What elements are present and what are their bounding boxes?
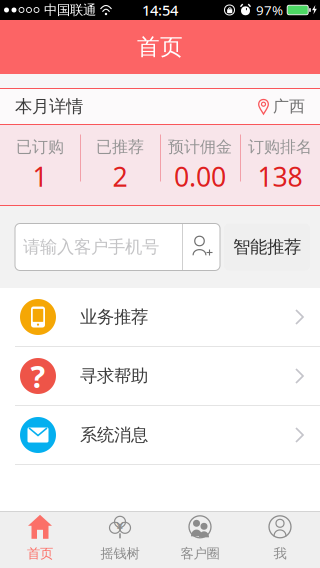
staticText: 14:54 bbox=[142, 0, 178, 20]
staticText: 138 bbox=[257, 159, 302, 194]
staticText: 系统消息 bbox=[80, 424, 148, 446]
staticText: 预计佣金 bbox=[168, 137, 232, 157]
staticText: 客户圈 bbox=[180, 545, 219, 562]
staticText: 业务推荐 bbox=[80, 306, 148, 328]
button[interactable]: 系统消息 bbox=[0, 406, 320, 464]
staticText: 智能推荐 bbox=[233, 236, 301, 258]
button[interactable]: 首页 bbox=[0, 512, 80, 568]
staticText: ¥ bbox=[116, 517, 124, 535]
staticText: 本月详情 bbox=[15, 96, 83, 117]
staticText: 2 bbox=[112, 159, 127, 194]
button[interactable]: ¥ bbox=[80, 512, 160, 568]
staticText: 订购排名 bbox=[248, 137, 312, 157]
staticText: 1 bbox=[32, 159, 47, 194]
staticText: 已订购 bbox=[16, 137, 64, 157]
staticText: 我 bbox=[273, 545, 286, 562]
staticText: 中国联通 bbox=[44, 2, 96, 18]
button[interactable]: 智能推荐 bbox=[224, 223, 310, 270]
button[interactable]: 客户圈 bbox=[160, 512, 240, 568]
button[interactable]: 业务推荐 bbox=[0, 288, 320, 346]
staticText: 97% bbox=[256, 1, 283, 19]
staticText: 已推荐 bbox=[96, 137, 144, 157]
staticText: 0.00 bbox=[174, 159, 226, 194]
staticText: 摇钱树 bbox=[100, 545, 139, 562]
button[interactable]: ? bbox=[0, 347, 320, 405]
button[interactable]: 广西 bbox=[258, 91, 305, 122]
staticText: 寻求帮助 bbox=[80, 365, 148, 387]
staticText: 请输入客户手机号 bbox=[23, 236, 159, 258]
staticText: 广西 bbox=[273, 97, 305, 116]
staticText: 首页 bbox=[137, 33, 183, 61]
staticText: ? bbox=[30, 356, 45, 396]
staticText: 首页 bbox=[27, 545, 53, 562]
button[interactable]: 我 bbox=[240, 512, 320, 568]
